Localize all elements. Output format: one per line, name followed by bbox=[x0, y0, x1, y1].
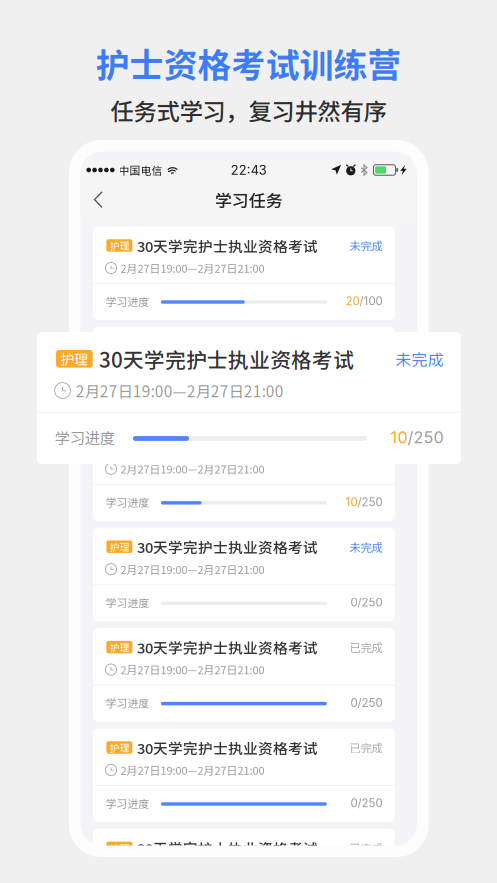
staticText: 学习进度 bbox=[105, 494, 149, 510]
staticText: 学习进度 bbox=[105, 293, 149, 309]
staticText: /250 bbox=[357, 796, 382, 810]
staticText: 2月27日19:00—2月27日21:00 bbox=[120, 561, 264, 577]
staticText: 未完成 bbox=[349, 338, 382, 354]
staticText: 30天学完护士执业资格考试 bbox=[99, 344, 354, 374]
button[interactable]: 护理 bbox=[93, 728, 395, 822]
staticText: 2月27日19:00—2月27日21:00 bbox=[120, 662, 264, 677]
staticText: /250 bbox=[357, 696, 382, 710]
staticText: 未完成 bbox=[349, 237, 382, 254]
staticText: 护理 bbox=[60, 349, 88, 369]
staticText: 30天学完护士执业资格考试 bbox=[137, 837, 318, 858]
staticText: 0 bbox=[350, 796, 357, 810]
staticText: 22:43 bbox=[231, 162, 267, 178]
staticText: 护士资格考试训练营 bbox=[95, 38, 401, 87]
button[interactable]: 护理 bbox=[93, 226, 395, 320]
staticText: 已完成 bbox=[349, 840, 382, 856]
button[interactable]: 护理 bbox=[93, 628, 395, 722]
staticText: 30天学完护士执业资格考试 bbox=[137, 436, 318, 457]
staticText: 学习进度 bbox=[105, 795, 149, 811]
staticText: 学习进度 bbox=[105, 394, 149, 409]
staticText: 2月27日19:00—2月27日21:00 bbox=[120, 762, 264, 778]
staticText: /250 bbox=[407, 427, 443, 447]
staticText: 2月27日19:00—2月27日21:00 bbox=[120, 360, 264, 376]
button[interactable]: 护理 bbox=[93, 829, 395, 883]
button[interactable]: Back bbox=[80, 180, 116, 219]
staticText: /250 bbox=[357, 495, 382, 509]
staticText: 2月27日19:00—2月27日21:00 bbox=[76, 379, 284, 402]
staticText: 中国电信 bbox=[118, 162, 162, 178]
staticText: 已完成 bbox=[349, 739, 382, 756]
staticText: 护理 bbox=[109, 439, 129, 453]
staticText: 学习任务 bbox=[215, 187, 283, 212]
staticText: 学习进度 bbox=[55, 426, 115, 448]
staticText: 30天学完护士执业资格考试 bbox=[137, 737, 318, 758]
staticText: 学习进度 bbox=[105, 695, 149, 711]
staticText: 护理 bbox=[109, 540, 129, 554]
staticText: 学习进度 bbox=[105, 594, 149, 610]
staticText: 0 bbox=[350, 696, 357, 710]
staticText: 2月27日19:00—2月27日21:00 bbox=[120, 260, 264, 276]
staticText: 已完成 bbox=[349, 639, 382, 655]
staticText: 30天学完护士执业资格考试 bbox=[137, 536, 318, 557]
staticText: 2月27日19:00—2月27日21:00 bbox=[120, 461, 264, 477]
staticText: 护理 bbox=[109, 339, 129, 353]
staticText: 20 bbox=[345, 294, 359, 308]
staticText: 护理 bbox=[109, 238, 129, 253]
staticText: 10 bbox=[345, 495, 357, 509]
staticText: 30天学完护士执业资格考试 bbox=[137, 636, 318, 658]
staticText: 未完成 bbox=[395, 347, 443, 370]
button[interactable]: 护理 bbox=[93, 427, 395, 521]
staticText: 10 bbox=[390, 427, 407, 447]
button[interactable]: 护理 bbox=[93, 528, 395, 621]
staticText: 30天学完护士执业资格考试 bbox=[137, 235, 318, 256]
staticText: 护理 bbox=[109, 640, 129, 654]
staticText: /100 bbox=[359, 294, 382, 308]
staticText: /250 bbox=[357, 595, 382, 609]
staticText: 未完成 bbox=[349, 538, 382, 555]
staticText: 护理 bbox=[109, 740, 129, 755]
button[interactable]: 护理 bbox=[37, 332, 461, 464]
button[interactable]: 护理 bbox=[93, 327, 395, 420]
staticText: 护理 bbox=[109, 841, 129, 855]
staticText: 0 bbox=[350, 595, 357, 609]
staticText: 30天学完护士执业资格考试 bbox=[137, 335, 318, 356]
staticText: 任务式学习，复习井然有序 bbox=[110, 93, 386, 127]
staticText: 未完成 bbox=[349, 438, 382, 454]
